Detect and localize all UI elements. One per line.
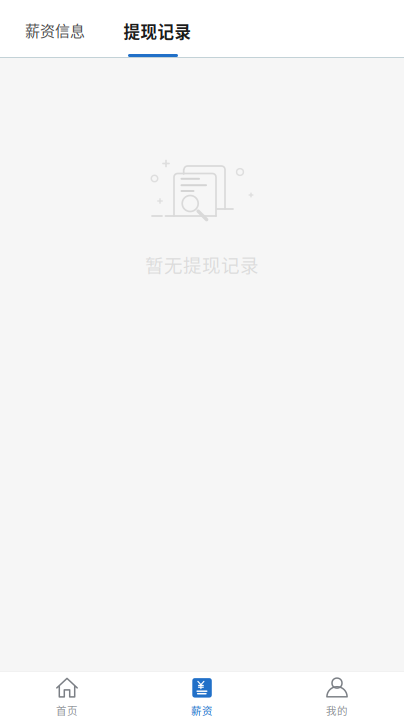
staticText: 薪资信息 bbox=[25, 19, 85, 41]
staticText: 我的 bbox=[326, 702, 348, 718]
button[interactable]: 提现记录 bbox=[123, 0, 192, 57]
button[interactable]: 薪资 bbox=[134, 671, 270, 720]
staticText: 暂无提现记录 bbox=[145, 251, 259, 278]
button[interactable]: 首页 bbox=[0, 671, 134, 720]
button[interactable]: 我的 bbox=[270, 671, 404, 720]
staticText: 薪资 bbox=[191, 702, 213, 718]
button[interactable]: 薪资信息 bbox=[24, 0, 86, 57]
staticText: 首页 bbox=[56, 702, 78, 718]
staticText: 提现记录 bbox=[123, 19, 191, 43]
